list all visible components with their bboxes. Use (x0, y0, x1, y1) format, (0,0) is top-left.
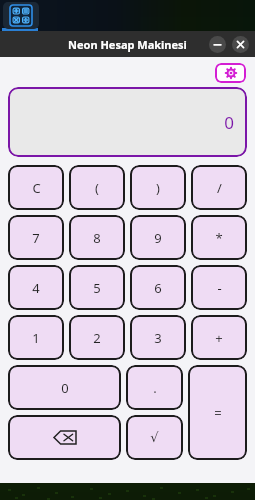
button[interactable]: 0 (8, 365, 121, 410)
button[interactable]: Close (232, 36, 249, 53)
button[interactable]: Calculator app (3, 2, 39, 29)
staticText: 6 (154, 279, 162, 297)
staticText: ( (95, 179, 99, 197)
staticText: ) (156, 179, 160, 197)
staticText: 2 (93, 329, 101, 347)
staticText: 7 (32, 229, 40, 247)
staticText: 1 (32, 329, 40, 347)
button[interactable]: 6 (130, 265, 186, 310)
staticText: + (215, 329, 223, 347)
button[interactable]: ) (130, 165, 186, 210)
staticText: / (217, 179, 222, 197)
button[interactable]: = (188, 365, 247, 460)
button[interactable]: 9 (130, 215, 186, 260)
button[interactable]: 7 (8, 215, 64, 260)
staticText: * (215, 229, 223, 247)
button[interactable]: Settings (215, 63, 246, 83)
button[interactable]: 8 (69, 215, 125, 260)
button[interactable]: Minimize (209, 36, 226, 53)
staticText: 3 (154, 329, 162, 347)
staticText: - (217, 279, 222, 297)
staticText: 9 (154, 229, 162, 247)
staticText: 5 (93, 279, 101, 297)
button[interactable]: / (191, 165, 247, 210)
button[interactable]: 1 (8, 315, 64, 360)
button[interactable]: * (191, 215, 247, 260)
button[interactable]: 4 (8, 265, 64, 310)
staticText: Neon Hesap Makinesi (68, 37, 187, 52)
button[interactable]: ( (69, 165, 125, 210)
button[interactable]: - (191, 265, 247, 310)
button[interactable]: . (126, 365, 183, 410)
staticText: 8 (93, 229, 101, 247)
button[interactable]: C (8, 165, 64, 210)
staticText: . (153, 379, 157, 397)
button[interactable]: 5 (69, 265, 125, 310)
button[interactable]: 2 (69, 315, 125, 360)
button[interactable]: 3 (130, 315, 186, 360)
staticText: C (32, 179, 41, 197)
button[interactable]: + (191, 315, 247, 360)
staticText: √ (150, 430, 159, 445)
staticText: 0 (224, 111, 234, 134)
staticText: 4 (32, 279, 40, 297)
button[interactable]: Backspace (8, 415, 121, 460)
staticText: = (214, 404, 222, 422)
staticText: 0 (61, 379, 69, 397)
button[interactable]: √ (126, 415, 183, 460)
